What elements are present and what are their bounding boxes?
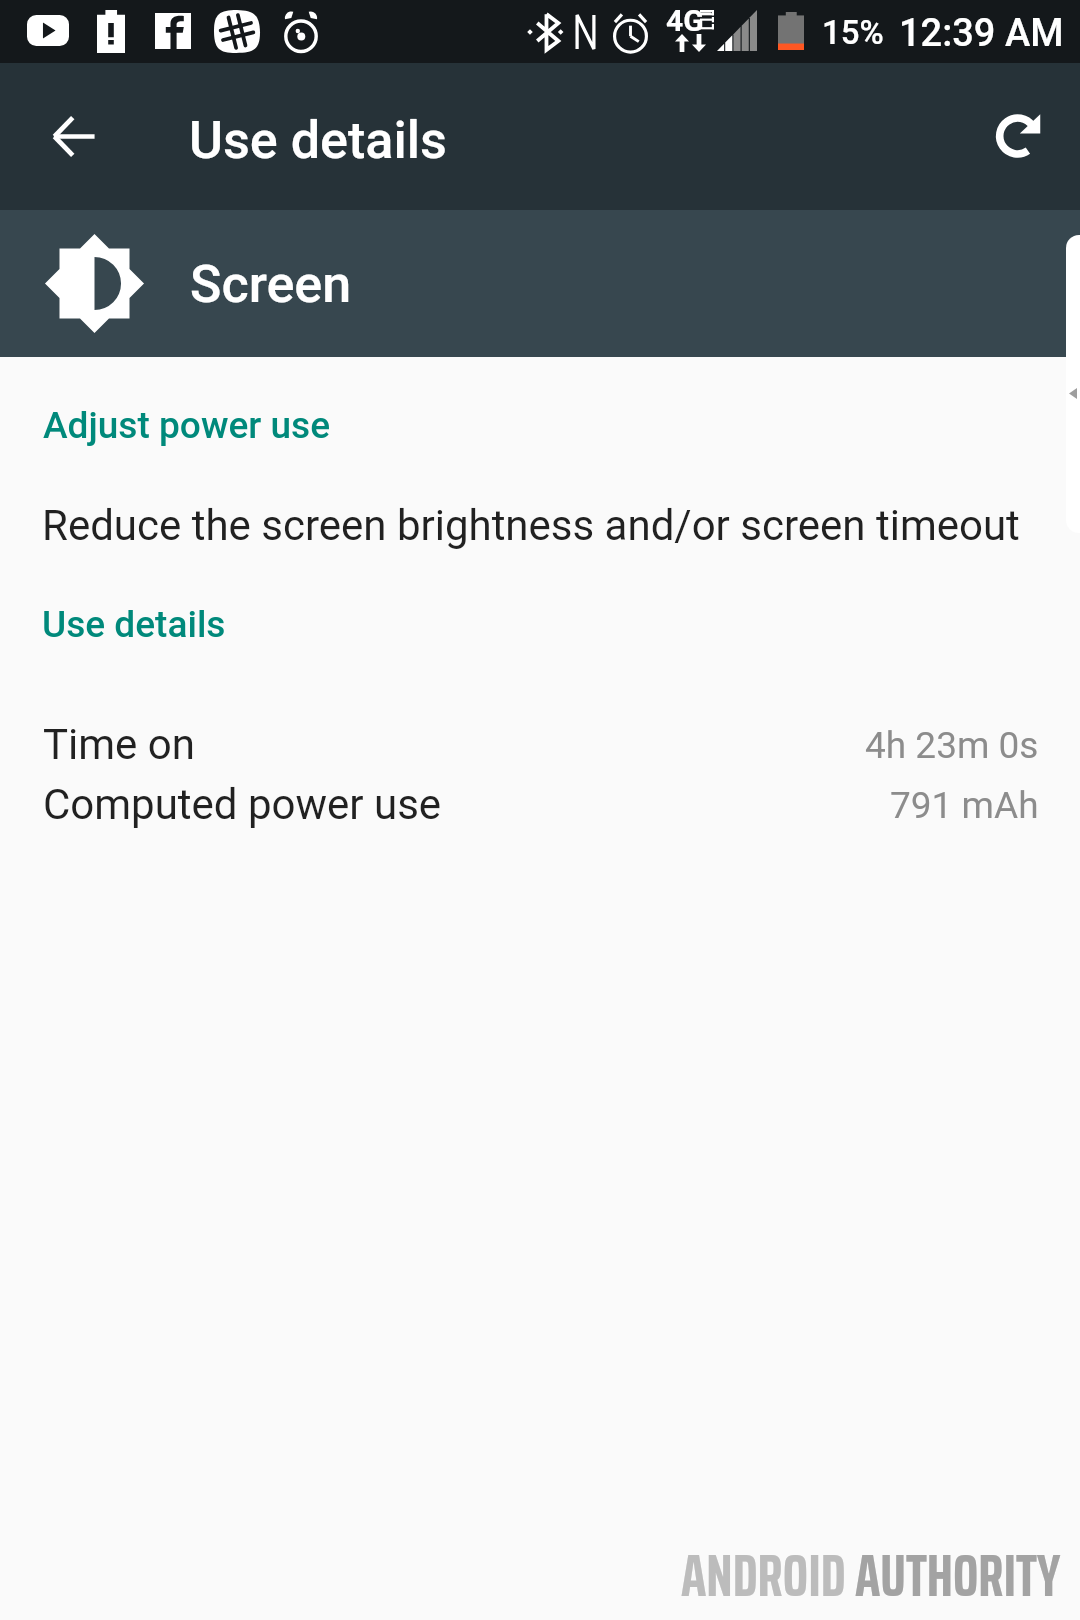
button[interactable]: Scroll bbox=[1066, 235, 1080, 533]
staticText: AUTHORITY bbox=[855, 1528, 1061, 1620]
staticText: ANDROID bbox=[681, 1528, 855, 1620]
staticText: 4G bbox=[666, 3, 704, 38]
staticText: Reduce the screen brightness and/or scre… bbox=[42, 501, 1020, 550]
button[interactable]: Back bbox=[30, 92, 118, 180]
staticText: 12:39 AM bbox=[899, 11, 1064, 56]
staticText: Screen bbox=[190, 254, 352, 315]
button[interactable]: Refresh bbox=[975, 92, 1063, 180]
staticText: Use details bbox=[189, 110, 447, 171]
staticText: 791 mAh bbox=[890, 784, 1039, 827]
button[interactable]: Screen bbox=[0, 210, 1080, 357]
staticText: 15% bbox=[822, 13, 884, 52]
staticText: Time on bbox=[43, 720, 195, 769]
staticText: 4h 23m 0s bbox=[865, 724, 1039, 767]
staticText: Computed power use bbox=[43, 780, 442, 829]
staticText: Adjust power use bbox=[43, 404, 331, 447]
staticText: Use details bbox=[42, 603, 226, 646]
